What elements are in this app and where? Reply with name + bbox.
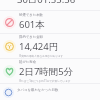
button[interactable]: 30日01:55:56	[0, 0, 100, 10]
button[interactable]: Cigarettes avoided	[0, 11, 100, 33]
staticText: ※たばこ1本につき約11分で計算しています	[19, 79, 71, 83]
staticText: 2日7時間5分	[19, 65, 74, 78]
button[interactable]: タバコを吸わなかった日数	[0, 84, 100, 100]
other: Cigarettes avoided	[3, 16, 16, 29]
staticText: 601本	[19, 18, 45, 31]
other: Money saved	[3, 40, 16, 53]
other: Life regained	[3, 65, 16, 78]
staticText: 禁煙できた本数	[19, 13, 43, 17]
staticText: 節約できた金額	[19, 35, 43, 39]
staticText: 30日01:55:56	[17, 0, 76, 3]
staticText: 14,424円	[19, 40, 59, 53]
button[interactable]: Life regained	[0, 59, 100, 83]
staticText: タバコを吸わなかった日数	[17, 88, 59, 92]
staticText: ※実際の価格と異なる場合があります	[19, 54, 64, 58]
staticText: 延びた寿命	[19, 60, 37, 64]
button[interactable]: Money saved	[0, 34, 100, 58]
